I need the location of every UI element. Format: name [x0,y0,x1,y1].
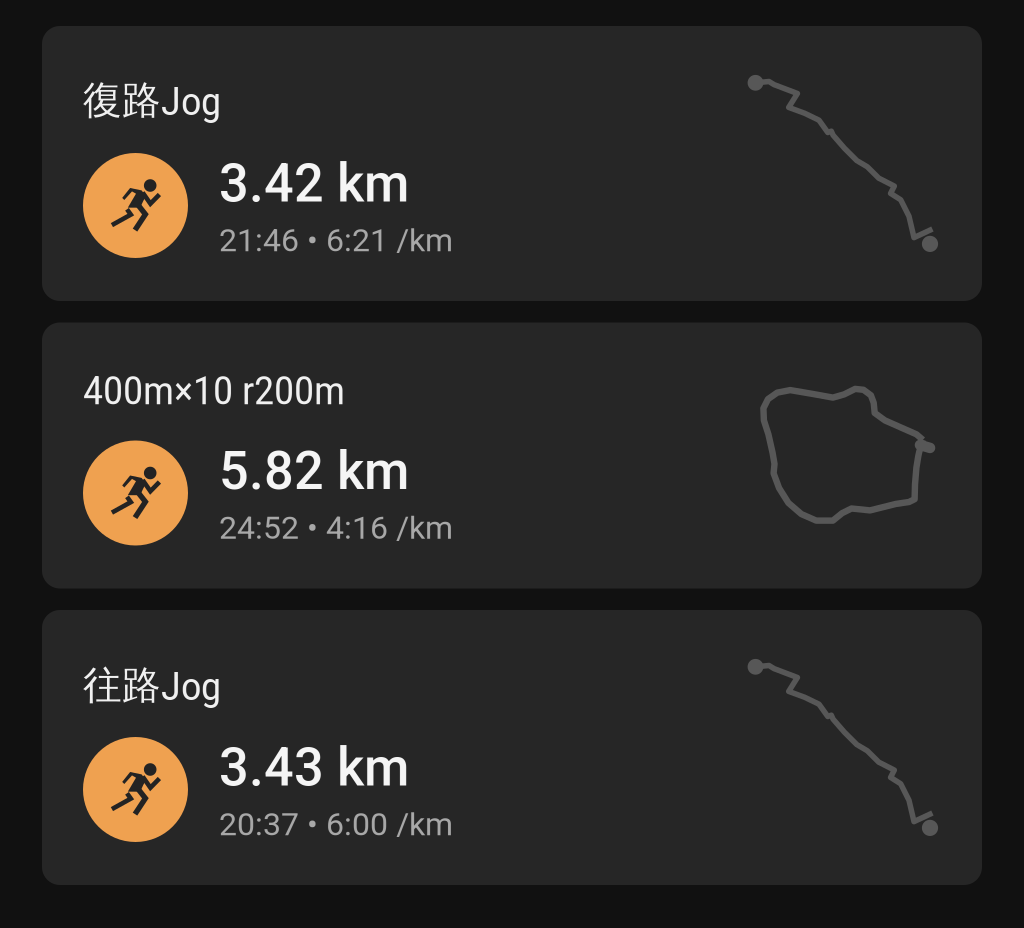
staticText: 3.42 km [219,152,409,214]
staticText: 往路Jog [83,661,221,710]
button[interactable]: 400m×10 r200m [42,322,982,588]
staticText: 24:52 • 4:16 /km [219,509,453,546]
staticText: 20:37 • 6:00 /km [219,805,453,843]
staticText: 3.43 km [219,736,409,798]
staticText: 21:46 • 6:21 /km [219,221,453,259]
button[interactable]: 復路Jog [42,26,982,301]
staticText: 復路Jog [83,76,221,125]
staticText: 400m×10 r200m [83,368,345,414]
button[interactable]: 往路Jog [42,610,982,885]
staticText: 5.82 km [219,439,409,502]
